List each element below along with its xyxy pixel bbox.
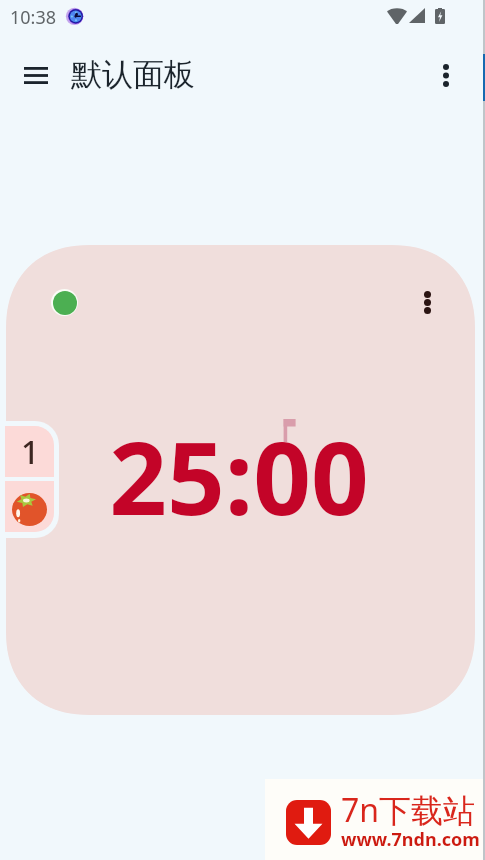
button[interactable]: Round 1 pomodoro xyxy=(4,421,59,538)
staticText: 1 xyxy=(21,430,40,474)
staticText: 10:38 xyxy=(10,5,57,30)
staticText: 默认面板 xyxy=(71,55,195,94)
staticText: 25:00 xyxy=(109,407,369,545)
button[interactable]: Timer options xyxy=(411,286,443,318)
staticText: www.7ndn.com xyxy=(341,827,480,852)
button[interactable]: Timer options xyxy=(6,245,475,715)
button[interactable]: More options xyxy=(424,53,468,97)
button[interactable]: Navigation menu xyxy=(14,53,58,97)
staticText: 7n下载站 xyxy=(341,788,476,832)
